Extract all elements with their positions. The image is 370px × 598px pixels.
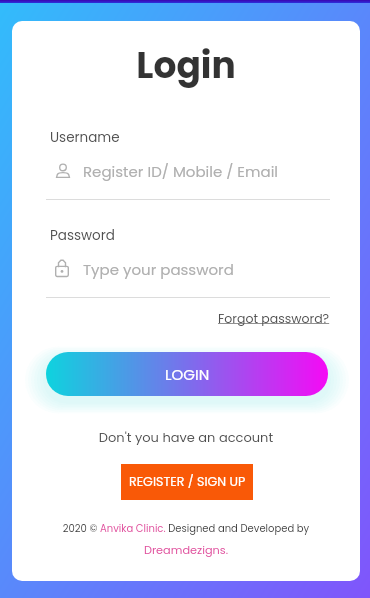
staticText: Username	[50, 128, 120, 147]
staticText: 2020 © Anvika Clinic. Designed and Devel…	[12, 521, 360, 535]
button[interactable]: REGISTER / SIGN UP	[121, 464, 253, 500]
staticText: Forgot password?	[218, 310, 330, 327]
staticText: Password	[50, 226, 115, 245]
button[interactable]: Dreamdezigns.	[12, 542, 360, 558]
staticText: Type your password	[83, 259, 234, 280]
staticText: LOGIN	[165, 364, 210, 385]
button[interactable]: LOGIN	[46, 352, 328, 396]
button[interactable]: Forgot password?	[218, 310, 330, 327]
staticText: REGISTER / SIGN UP	[129, 473, 246, 491]
staticText: Login	[12, 40, 360, 90]
staticText: Register ID/ Mobile / Email	[83, 161, 279, 182]
staticText: Don't you have an account	[12, 428, 360, 446]
